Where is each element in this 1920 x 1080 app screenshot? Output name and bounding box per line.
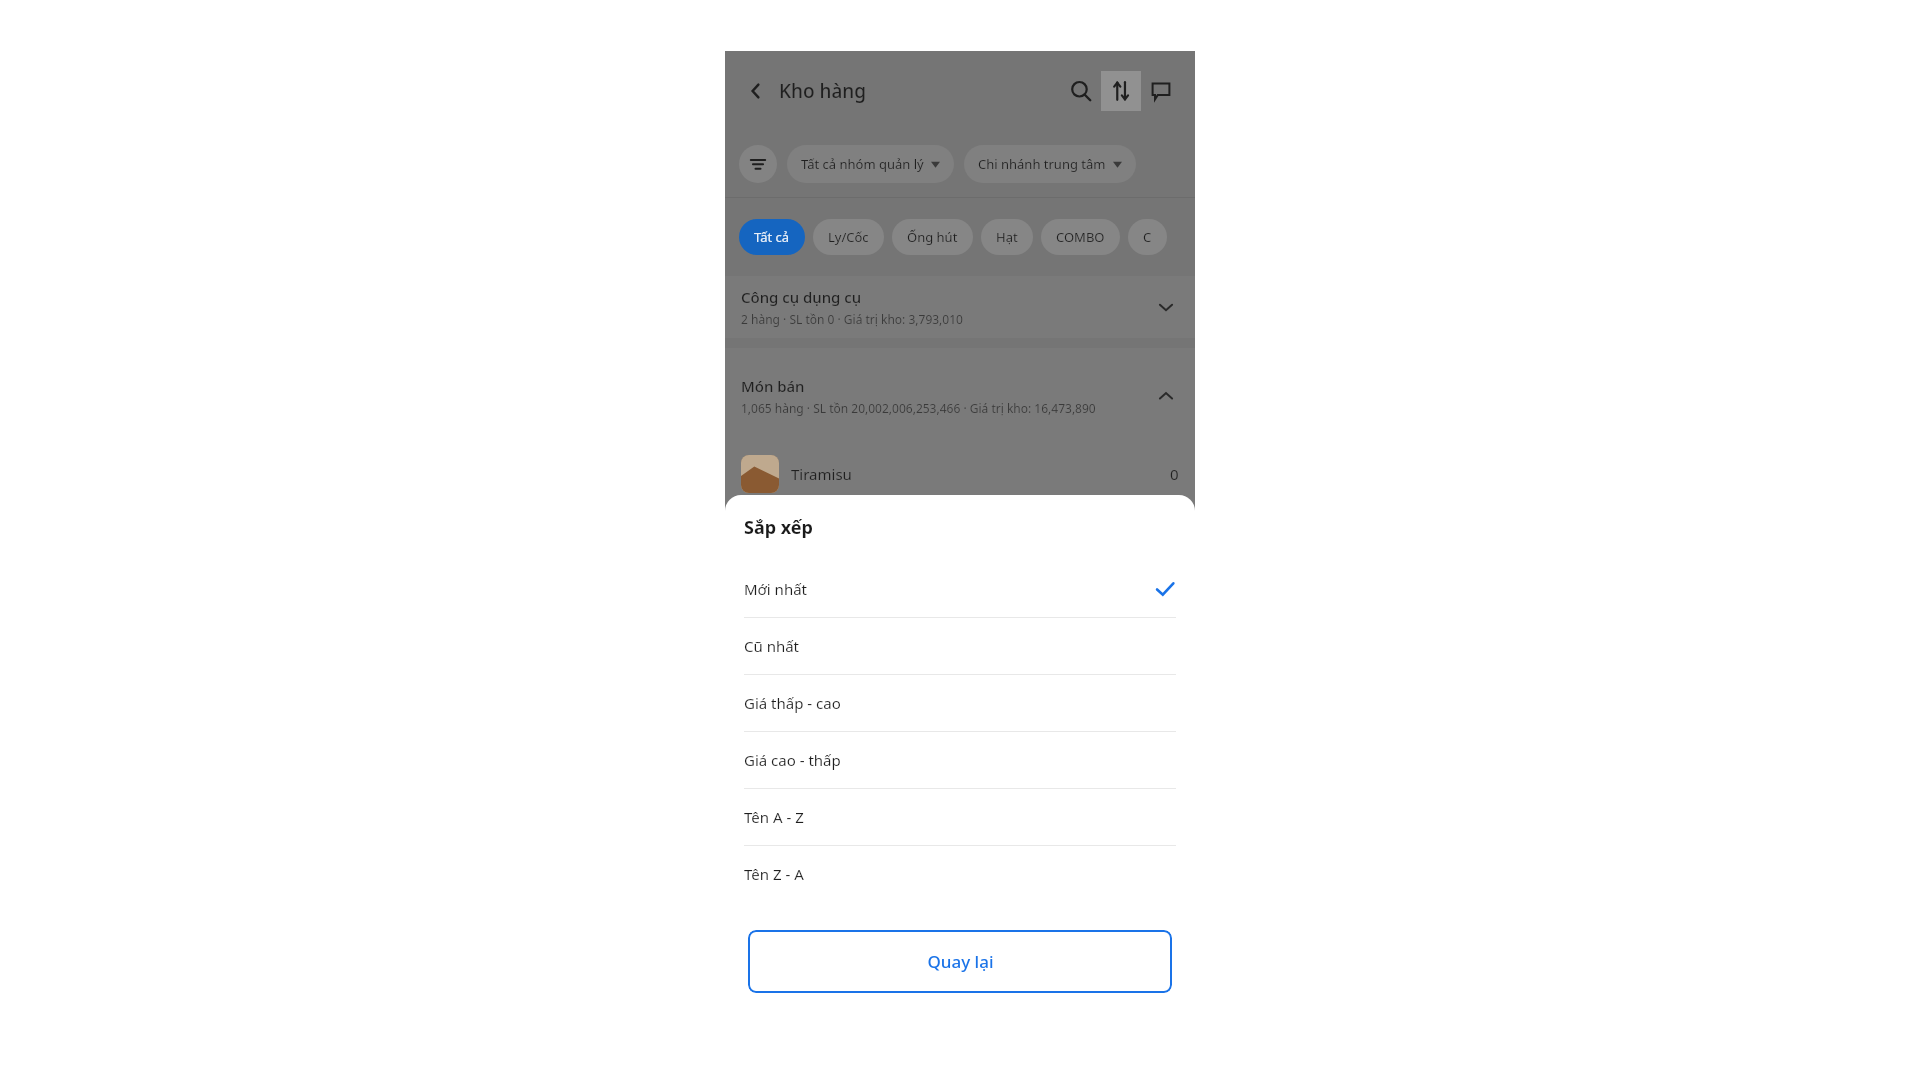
button[interactable]: Filter [739, 145, 777, 183]
staticText: C [1143, 228, 1152, 246]
button[interactable]: Tất cả nhóm quản lý [787, 145, 954, 183]
staticText: Tất cả nhóm quản lý [801, 155, 924, 173]
button[interactable]: Giá thấp - cao [725, 675, 1195, 731]
button[interactable]: Search [1061, 71, 1101, 111]
staticText: 0 [1170, 464, 1179, 484]
staticText: Kho hàng [779, 78, 866, 104]
button[interactable]: Tên Z - A [725, 846, 1195, 902]
staticText: COMBO [1056, 228, 1105, 246]
staticText: Tiramisu [791, 464, 852, 484]
button[interactable]: Tất cả [739, 219, 805, 255]
button[interactable]: Ống hút [892, 219, 973, 255]
button[interactable]: COMBO [1041, 219, 1120, 255]
staticText: Giá thấp - cao [744, 693, 841, 713]
staticText: 2 hàng · SL tồn 0 · Giá trị kho: 3,793,0… [741, 311, 963, 327]
staticText: Ống hút [907, 228, 958, 246]
button[interactable]: Cũ nhất [725, 618, 1195, 674]
staticText: Món bán [741, 376, 805, 396]
button[interactable]: C [1128, 219, 1167, 255]
button[interactable]: Sort [1101, 71, 1141, 111]
button[interactable]: Chi nhánh trung tâm [964, 145, 1136, 183]
staticText: Chi nhánh trung tâm [978, 155, 1106, 173]
button[interactable]: Help [1141, 71, 1181, 111]
button[interactable]: Quay lại [748, 930, 1172, 993]
staticText: Công cụ dụng cụ [741, 287, 862, 307]
staticText: Giá cao - thấp [744, 750, 841, 770]
staticText: Sắp xếp [744, 515, 813, 540]
staticText: Cũ nhất [744, 636, 800, 656]
button[interactable]: Tên A - Z [725, 789, 1195, 845]
staticText: Tên A - Z [744, 807, 804, 827]
staticText: Quay lại [927, 950, 994, 973]
staticText: Tất cả [754, 228, 790, 246]
staticText: Ly/Cốc [828, 228, 869, 246]
staticText: Tên Z - A [744, 864, 804, 884]
button[interactable]: Hạt [981, 219, 1033, 255]
button[interactable]: Back [739, 74, 773, 108]
button[interactable]: Mới nhất [725, 561, 1195, 617]
staticText: 1,065 hàng · SL tồn 20,002,006,253,466 ·… [741, 400, 1096, 416]
button[interactable]: Giá cao - thấp [725, 732, 1195, 788]
button[interactable]: Ly/Cốc [813, 219, 884, 255]
button[interactable]: Collapse [1151, 381, 1181, 411]
staticText: Hạt [996, 228, 1018, 246]
button[interactable]: Expand [1151, 292, 1181, 322]
staticText: Mới nhất [744, 579, 807, 599]
